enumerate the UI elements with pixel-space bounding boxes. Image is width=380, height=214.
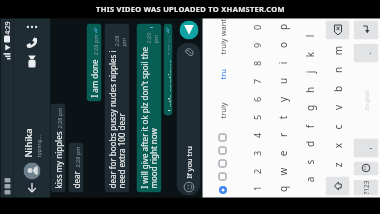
button[interactable]: y — [269, 90, 295, 108]
button[interactable]: 0 — [242, 18, 269, 36]
button[interactable]: i — [269, 54, 295, 72]
staticText: 0 — [250, 24, 262, 30]
staticText: 1 — [250, 185, 262, 191]
staticText: e — [275, 150, 289, 156]
staticText: r — [275, 132, 289, 137]
button[interactable]: 7 — [242, 72, 269, 90]
button[interactable]: 6 — [242, 90, 269, 108]
button[interactable]: kiss my nipples — [50, 103, 65, 192]
button[interactable]: Period — [353, 43, 378, 62]
button[interactable]: a — [295, 171, 323, 188]
staticText: y — [275, 96, 289, 102]
button[interactable]: 5 — [242, 108, 269, 126]
staticText: q — [275, 185, 289, 192]
staticText: truly — [217, 101, 227, 118]
button[interactable]: More options — [13, 20, 50, 34]
button[interactable]: t — [269, 108, 295, 126]
button[interactable]: Symbols — [353, 179, 378, 195]
staticText: 3 — [250, 150, 262, 156]
button[interactable]: w — [269, 162, 295, 180]
other: Attach — [183, 46, 194, 57]
button[interactable]: n — [323, 60, 351, 79]
button[interactable]: s — [295, 153, 323, 171]
button[interactable]: d — [295, 135, 323, 153]
staticText: ?123 — [361, 180, 370, 194]
button[interactable]: g — [295, 99, 323, 117]
staticText: 2:28 pm — [112, 27, 126, 46]
button[interactable]: truly — [202, 92, 242, 128]
staticText: n — [330, 66, 344, 73]
button[interactable]: Comma — [353, 138, 378, 157]
button[interactable]: tru — [202, 55, 242, 92]
staticText: 2:28 pm — [55, 107, 62, 128]
staticText: j — [302, 70, 316, 73]
button[interactable]: 1 — [242, 180, 269, 197]
button[interactable]: 4 — [242, 126, 269, 144]
button[interactable]: m — [323, 41, 351, 60]
button[interactable]: x — [323, 136, 351, 155]
button[interactable]: dear — [68, 142, 83, 192]
button[interactable]: Emoji — [353, 161, 378, 175]
button[interactable]: p — [269, 18, 295, 36]
button[interactable]: l — [295, 27, 323, 45]
button[interactable]: f — [295, 117, 323, 135]
button[interactable]: Enter — [353, 20, 378, 39]
staticText: Nihika — [21, 127, 34, 157]
staticText: c — [330, 124, 344, 129]
staticText: If you tru — [183, 145, 193, 178]
button[interactable]: j — [295, 63, 323, 81]
button[interactable]: Video call — [13, 52, 50, 70]
button[interactable]: I am done — [86, 23, 101, 101]
button[interactable]: Back — [13, 179, 50, 197]
staticText: kiss my nipples — [52, 131, 63, 188]
button[interactable]: 3 — [242, 144, 269, 162]
staticText: l — [302, 34, 316, 37]
staticText: s — [302, 159, 316, 164]
staticText: THIS VIDEO WAS UPLOADED TO XHAMSTER.COM — [96, 4, 285, 14]
staticText: 4:29 — [2, 21, 11, 34]
button[interactable]: I will give after it ok plz don't spoil … — [136, 23, 161, 192]
button[interactable]: r — [269, 126, 295, 144]
button[interactable]: 2 — [242, 162, 269, 180]
button[interactable]: Shift — [325, 176, 349, 195]
staticText: tru — [217, 68, 227, 79]
button[interactable]: 9 — [242, 36, 269, 54]
staticText: o — [275, 41, 289, 48]
staticText: u — [275, 77, 289, 84]
button[interactable]: dear for boobs pussy nudes nipples i nee… — [104, 23, 129, 192]
staticText: 4 — [250, 132, 262, 138]
staticText: x — [330, 142, 344, 148]
staticText: typing… — [34, 134, 42, 157]
staticText: 2:28 pm — [91, 34, 98, 55]
button[interactable]: k — [295, 45, 323, 63]
button[interactable]: c — [323, 117, 351, 136]
staticText: 5 — [250, 114, 262, 120]
button[interactable]: Space — [353, 66, 378, 134]
button[interactable]: o — [269, 36, 295, 54]
button[interactable]: truly want — [202, 18, 242, 55]
button[interactable]: Let's continue — [163, 23, 172, 115]
button[interactable]: e — [269, 144, 295, 162]
staticText: dear — [70, 170, 81, 188]
staticText: 6 — [250, 96, 262, 102]
button[interactable]: q — [269, 180, 295, 197]
button[interactable]: Call — [13, 34, 50, 52]
button[interactable]: Backspace — [325, 20, 349, 39]
staticText: f — [302, 124, 316, 128]
staticText: I will give after it ok plz don't spoil … — [138, 46, 159, 188]
staticText: 2:29 pm — [165, 34, 169, 55]
button[interactable]: v — [323, 98, 351, 117]
button[interactable]: z — [323, 155, 351, 174]
button[interactable]: h — [295, 81, 323, 99]
button[interactable]: b — [323, 79, 351, 98]
button[interactable]: Send — [179, 20, 198, 39]
staticText: English — [362, 89, 370, 110]
staticText: 2:28 pm — [73, 146, 80, 167]
button[interactable]: If you tru — [176, 42, 200, 195]
staticText: 2 — [250, 168, 262, 174]
button[interactable]: u — [269, 72, 295, 90]
staticText: d — [302, 140, 316, 147]
staticText: Let's continue — [165, 58, 170, 111]
button[interactable]: 8 — [242, 54, 269, 72]
staticText: b — [330, 85, 344, 92]
